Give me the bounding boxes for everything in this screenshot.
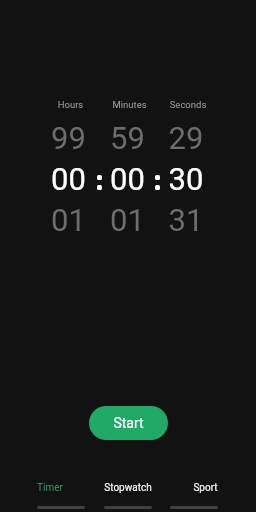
- staticText: Sport: [193, 482, 218, 494]
- staticText: Minutes: [100, 99, 159, 110]
- button[interactable]: Stopwatch: [104, 482, 152, 494]
- staticText: 29: [157, 120, 215, 156]
- staticText: 00: [98, 161, 157, 197]
- staticText: 01: [39, 202, 98, 238]
- button[interactable]: Seconds: [157, 99, 215, 239]
- staticText: Start: [113, 415, 144, 431]
- staticText: 59: [98, 120, 157, 156]
- button[interactable]: Hours: [39, 99, 98, 239]
- button[interactable]: Sport: [193, 482, 218, 494]
- button[interactable]: Timer: [37, 482, 63, 494]
- staticText: 99: [39, 120, 98, 156]
- staticText: Stopwatch: [104, 482, 152, 494]
- staticText: Hours: [41, 99, 100, 110]
- staticText: 01: [98, 202, 157, 238]
- staticText: 31: [157, 202, 215, 238]
- staticText: 00: [39, 161, 98, 197]
- button[interactable]: Start: [89, 406, 168, 440]
- staticText: 30: [157, 161, 215, 197]
- staticText: Seconds: [159, 99, 217, 110]
- staticText: Timer: [37, 482, 63, 494]
- button[interactable]: Minutes: [98, 99, 157, 239]
